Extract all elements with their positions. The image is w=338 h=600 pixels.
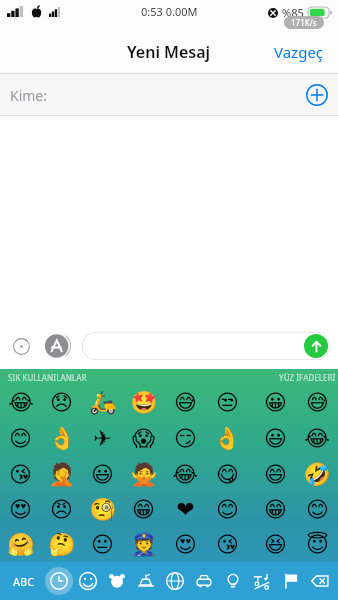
button[interactable]: Semboller — [248, 567, 276, 595]
staticText: 😅 — [306, 390, 329, 416]
button[interactable]: Hayvanlar — [103, 567, 131, 595]
button[interactable]: Seyahat — [190, 567, 218, 595]
button[interactable]: 😒 — [206, 385, 248, 421]
staticText: 😆 — [264, 532, 287, 558]
staticText: 😊 — [9, 426, 32, 452]
button[interactable]: 😊 — [206, 492, 248, 527]
button[interactable]: Gönder — [304, 334, 328, 358]
button[interactable]: 😇 — [296, 527, 338, 562]
staticText: %85 — [282, 5, 304, 20]
button[interactable]: 👮 — [123, 527, 164, 562]
button[interactable]: 🤦 — [41, 457, 82, 492]
button[interactable]: Vazgeç — [260, 32, 338, 72]
staticText: 😀 — [264, 390, 287, 416]
button[interactable]: 😏 — [164, 421, 206, 457]
button[interactable]: 👌 — [206, 421, 248, 457]
staticText: 😂 — [304, 426, 330, 452]
button[interactable]: Sık kullanılanlar — [45, 567, 73, 595]
button[interactable]: 😍 — [0, 492, 41, 527]
button[interactable]: Kişi ekle — [306, 84, 328, 106]
button[interactable]: 😊 — [0, 421, 41, 457]
button[interactable]: 🧐 — [82, 492, 123, 527]
staticText: 🧐 — [89, 497, 117, 523]
staticText: 🤦 — [48, 462, 76, 488]
button[interactable]: 🤔 — [41, 527, 82, 562]
staticText: 😒 — [216, 390, 239, 416]
staticText: 👌 — [48, 426, 76, 452]
staticText: 🤗 — [7, 532, 35, 558]
staticText: 😍 — [174, 532, 197, 558]
button[interactable]: 😠 — [41, 492, 82, 527]
staticText: 😇 — [306, 532, 329, 558]
button[interactable]: 😃 — [254, 421, 296, 457]
button[interactable]: 😂 — [0, 385, 41, 421]
staticText: ❤️ — [176, 497, 195, 523]
staticText: 😋 — [216, 462, 239, 488]
staticText: 😅 — [174, 390, 197, 416]
button[interactable]: App Store — [44, 332, 72, 360]
staticText: 👮 — [130, 532, 158, 558]
button[interactable]: 🤗 — [0, 527, 41, 562]
button[interactable]: ABC — [4, 566, 44, 596]
button[interactable]: 🤩 — [123, 385, 164, 421]
staticText: Kime: — [10, 86, 48, 105]
staticText: 😘 — [216, 532, 239, 558]
button[interactable]: ❤️ — [164, 492, 206, 527]
button[interactable]: Yiyecek — [132, 567, 160, 595]
button[interactable]: Sil — [306, 567, 334, 595]
staticText: 😂 — [172, 462, 198, 488]
staticText: 0:53 0.00M — [141, 4, 198, 19]
button[interactable]: 😘 — [0, 457, 41, 492]
button[interactable]: 😁 — [254, 492, 296, 527]
button[interactable]: 😐 — [82, 527, 123, 562]
staticText: 😊 — [306, 497, 329, 523]
button[interactable]: 😅 — [164, 385, 206, 421]
button[interactable]: Yüz ifadeleri — [74, 567, 102, 595]
button[interactable]: 😀 — [254, 385, 296, 421]
staticText: 🤔 — [48, 532, 76, 558]
staticText: 😱 — [132, 426, 155, 452]
staticText: 😁 — [132, 497, 155, 523]
staticText: 😘 — [9, 462, 32, 488]
button[interactable]: 😂 — [296, 421, 338, 457]
staticText: 😞 — [50, 390, 73, 416]
button[interactable]: 🛵 — [82, 385, 123, 421]
button[interactable]: Etkinlik — [161, 567, 189, 595]
staticText: Yeni Mesaj — [127, 41, 211, 63]
button[interactable]: Nesneler — [219, 567, 247, 595]
staticText: ABC — [13, 574, 35, 589]
button[interactable]: 😍 — [164, 527, 206, 562]
staticText: 😐 — [91, 532, 114, 558]
button[interactable]: 😋 — [206, 457, 248, 492]
staticText: 171K/s — [291, 17, 317, 28]
button[interactable]: 😃 — [82, 457, 123, 492]
button[interactable]: 😂 — [164, 457, 206, 492]
staticText: 🛵 — [89, 390, 117, 416]
button[interactable]: 😞 — [41, 385, 82, 421]
staticText: 😊 — [216, 497, 239, 523]
staticText: 😁 — [264, 497, 287, 523]
button[interactable]: 😅 — [296, 385, 338, 421]
button[interactable]: 😘 — [206, 527, 248, 562]
staticText: 🤣 — [303, 462, 331, 488]
staticText: 🤩 — [130, 390, 158, 416]
staticText: SIK KULLANILANLAR — [8, 372, 87, 383]
button[interactable]: 👌 — [41, 421, 82, 457]
staticText: 😃 — [264, 426, 287, 452]
staticText: 😍 — [9, 497, 32, 523]
button[interactable]: 😱 — [123, 421, 164, 457]
staticText: 😏 — [174, 426, 197, 452]
button[interactable]: 😊 — [296, 492, 338, 527]
button[interactable]: Kamera — [8, 333, 34, 359]
button[interactable]: ✈️ — [82, 421, 123, 457]
button[interactable]: 😆 — [254, 527, 296, 562]
button[interactable]: Gönder — [82, 332, 330, 360]
button[interactable]: Kime: — [0, 74, 338, 116]
staticText: ✈️ — [93, 426, 112, 452]
button[interactable]: 🙅 — [123, 457, 164, 492]
button[interactable]: Bayraklar — [277, 567, 305, 595]
button[interactable]: 😁 — [123, 492, 164, 527]
button[interactable]: 🤣 — [296, 457, 338, 492]
button[interactable]: 😄 — [254, 457, 296, 492]
staticText: 🙅 — [130, 462, 158, 488]
